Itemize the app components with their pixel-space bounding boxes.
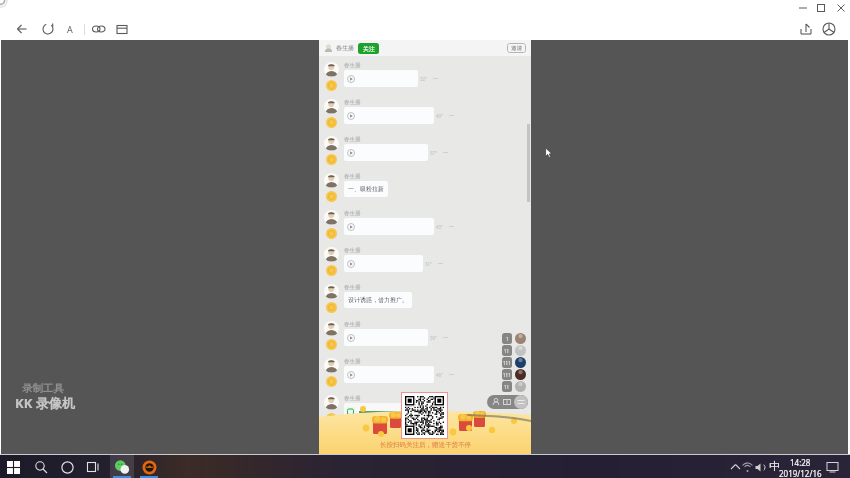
button[interactable]: Open link	[344, 403, 440, 420]
staticText: 39"	[430, 335, 437, 341]
button[interactable]: Search	[33, 459, 49, 475]
staticText: 春生播	[344, 284, 361, 291]
staticText: 2019/12/16	[779, 468, 822, 478]
button[interactable]: Close	[834, 1, 848, 15]
button[interactable]: Viewer rank 1	[502, 333, 526, 344]
button[interactable]: Viewer rank 3	[502, 357, 526, 368]
button[interactable]: More	[514, 395, 528, 409]
button[interactable]: Clock	[778, 457, 822, 478]
staticText: 录制工具	[22, 382, 64, 395]
button[interactable]: 一、吸粉拉新	[344, 181, 388, 197]
button[interactable]: Show hidden icons	[727, 459, 743, 475]
button[interactable]: Viewer rank 4	[502, 369, 526, 380]
button[interactable]: Viewer rank 5	[502, 381, 526, 392]
button[interactable]: Gift	[502, 397, 512, 407]
staticText: 春生播	[344, 321, 361, 328]
button[interactable]: 邀请	[507, 43, 526, 53]
button[interactable]: Browser	[141, 459, 157, 475]
button[interactable]: Settings	[822, 22, 836, 36]
button[interactable]: Minimize	[796, 1, 810, 15]
staticText: A	[67, 23, 73, 35]
staticText: 春生播	[344, 210, 361, 217]
staticText: 111	[503, 372, 511, 378]
button[interactable]: Task view	[85, 459, 101, 475]
staticText: 春生播	[344, 173, 361, 180]
button[interactable]: 关注	[358, 43, 379, 54]
button[interactable]: Play voice message	[344, 218, 434, 235]
button[interactable]: Start	[5, 459, 21, 475]
button[interactable]: Back	[15, 22, 29, 36]
button[interactable]: Refresh	[41, 22, 55, 36]
staticText: 11	[504, 348, 510, 354]
staticText: 40"	[436, 113, 443, 119]
button[interactable]: Cortana	[59, 459, 75, 475]
button[interactable]: Play voice message	[344, 329, 428, 346]
staticText: 14:28	[790, 457, 811, 468]
button[interactable]: 设计诱惑，借力推广。	[344, 292, 412, 308]
button[interactable]: Play voice message	[344, 107, 434, 124]
button[interactable]: Play voice message	[344, 366, 434, 383]
staticText: 春生播	[344, 99, 361, 106]
button[interactable]: Read aloud	[63, 22, 77, 36]
staticText: 11	[504, 384, 510, 390]
staticText: 春生播	[344, 395, 361, 402]
staticText: 45"	[436, 224, 443, 230]
button[interactable]: Share	[799, 22, 813, 36]
button[interactable]: Collections	[115, 22, 129, 36]
button[interactable]: WeChat	[114, 459, 130, 475]
staticText: 31"	[425, 261, 432, 267]
staticText: 中	[769, 459, 780, 471]
staticText: 春生播	[344, 358, 361, 365]
staticText: 111	[503, 360, 511, 366]
button[interactable]: Members	[491, 397, 501, 407]
button[interactable]: Input method	[768, 459, 780, 471]
staticText: 37"	[430, 150, 437, 156]
staticText: 一、吸粉拉新	[348, 185, 384, 193]
button[interactable]: Volume	[752, 459, 768, 475]
button[interactable]: Maximize	[814, 1, 828, 15]
staticText: 春生播	[344, 136, 361, 143]
button[interactable]: Play voice message	[344, 144, 428, 161]
staticText: 46"	[436, 372, 443, 378]
button[interactable]: Link	[92, 22, 106, 36]
staticText: KK 录像机	[15, 394, 75, 412]
button[interactable]: Notifications	[824, 459, 840, 475]
button[interactable]: Network	[739, 459, 755, 475]
staticText: 32"	[420, 76, 427, 82]
staticText: 设计诱惑，借力推广。	[348, 296, 408, 304]
staticText: 春生播	[344, 62, 361, 69]
staticText: 长按扫码关注后，赠送干货不停	[380, 441, 471, 449]
staticText: 春生播	[336, 44, 354, 52]
staticText: 邀请	[511, 45, 522, 52]
button[interactable]: Play voice message	[344, 70, 418, 87]
staticText: 关注	[363, 45, 375, 53]
staticText: 春生播	[344, 247, 361, 254]
button[interactable]: Play voice message	[344, 255, 423, 272]
staticText: 1	[506, 336, 509, 342]
button[interactable]: Viewer rank 2	[502, 345, 526, 356]
